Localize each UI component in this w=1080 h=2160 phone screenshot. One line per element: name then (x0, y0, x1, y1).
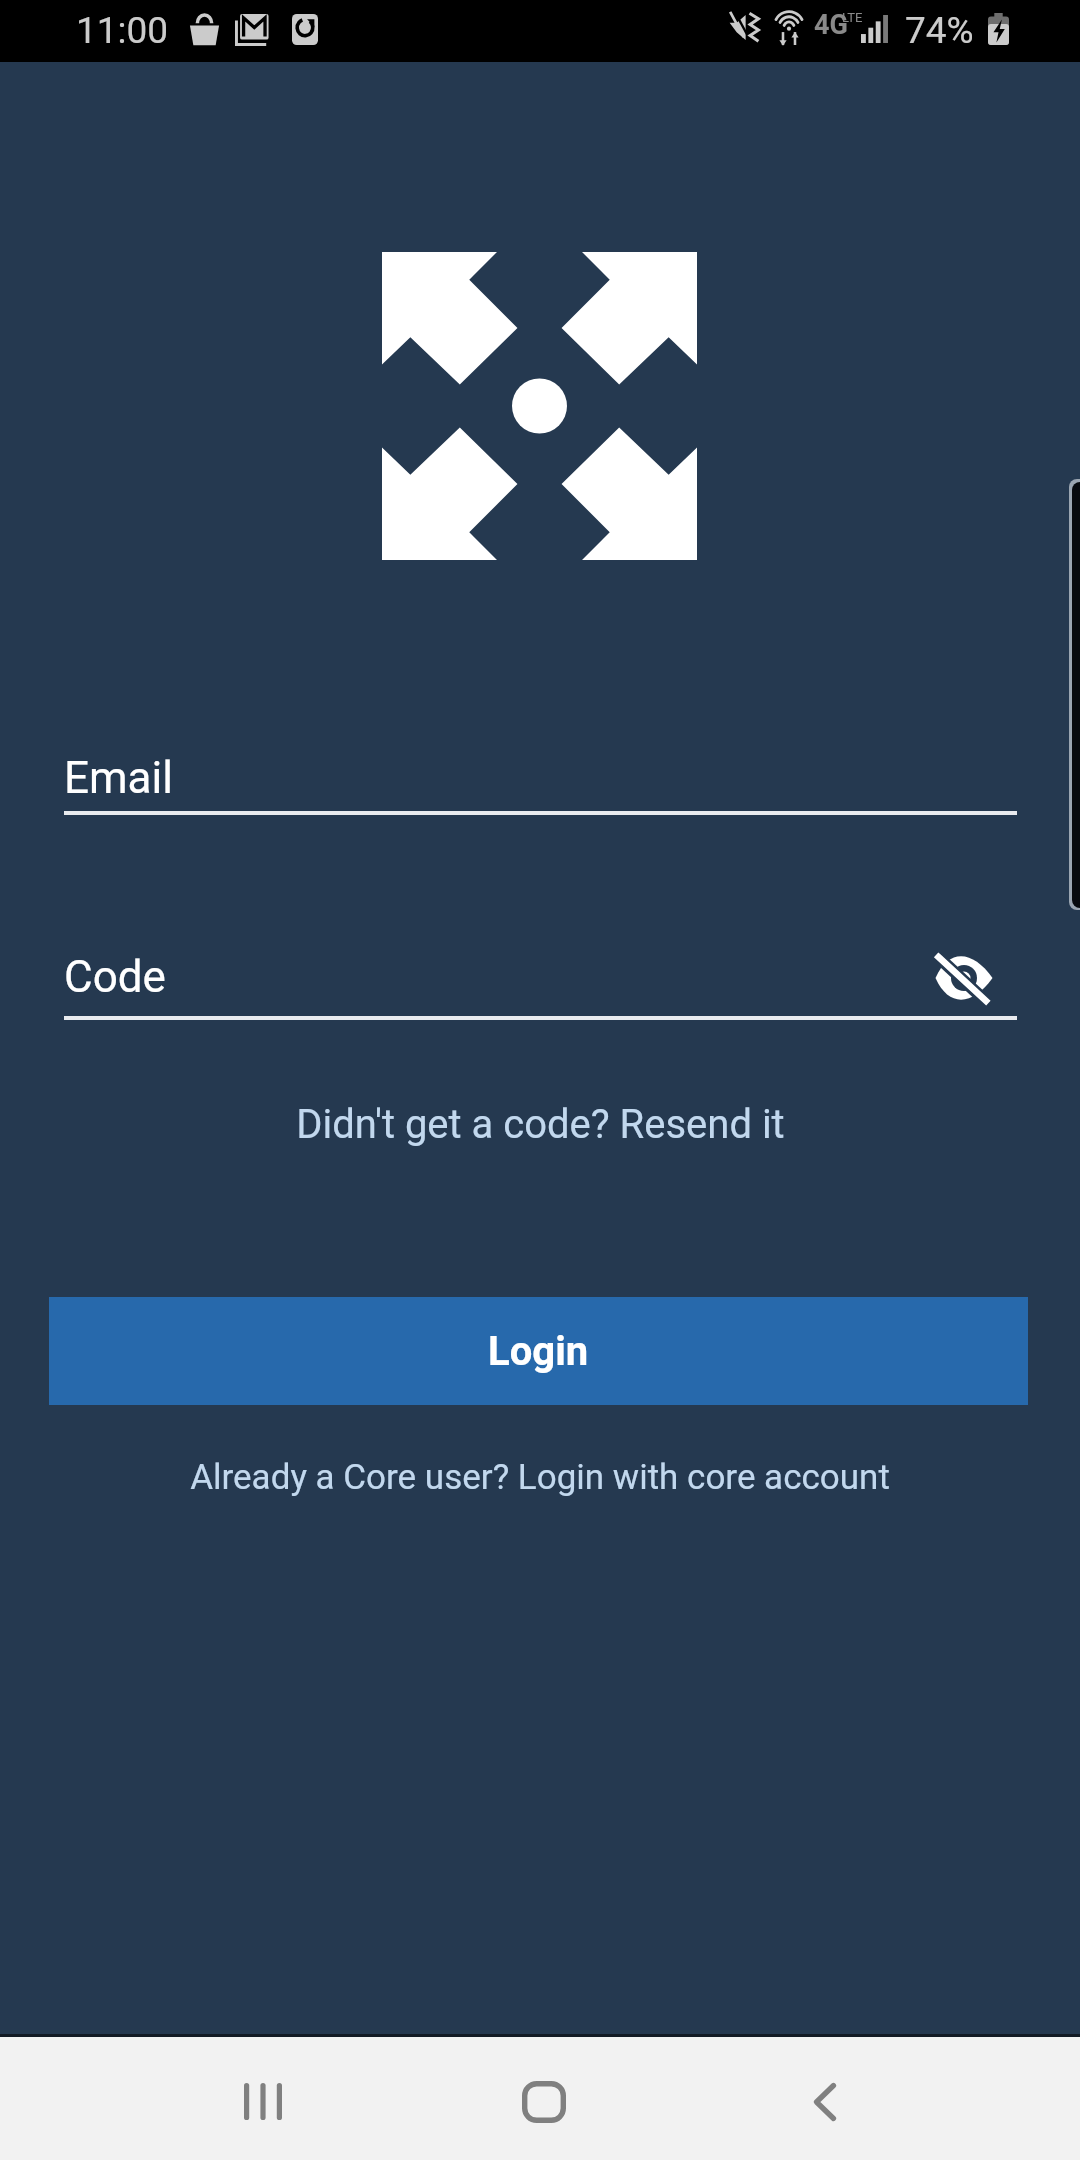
staticText: Code (64, 951, 166, 1003)
button[interactable]: Show code (930, 948, 998, 1008)
staticText: Didn't get a code? Resend it (296, 1101, 785, 1148)
button[interactable]: Email (64, 742, 1017, 815)
staticText: 11:00 (76, 9, 169, 52)
staticText: LTE (842, 10, 863, 25)
button[interactable]: Already a Core user? Login with core acc… (190, 1448, 890, 1506)
staticText: 4G (814, 9, 848, 41)
staticText: 74% (905, 9, 974, 52)
button[interactable]: Back (745, 2043, 905, 2160)
button[interactable]: Didn't get a code? Resend it (296, 1093, 785, 1155)
staticText: Email (64, 752, 173, 804)
staticText: Already a Core user? Login with core acc… (190, 1457, 890, 1498)
button[interactable]: Code (64, 941, 1017, 1020)
button[interactable]: Login (49, 1297, 1028, 1405)
staticText: Login (488, 1328, 589, 1375)
button[interactable]: Recents (183, 2043, 343, 2160)
button[interactable]: Home (464, 2043, 624, 2160)
